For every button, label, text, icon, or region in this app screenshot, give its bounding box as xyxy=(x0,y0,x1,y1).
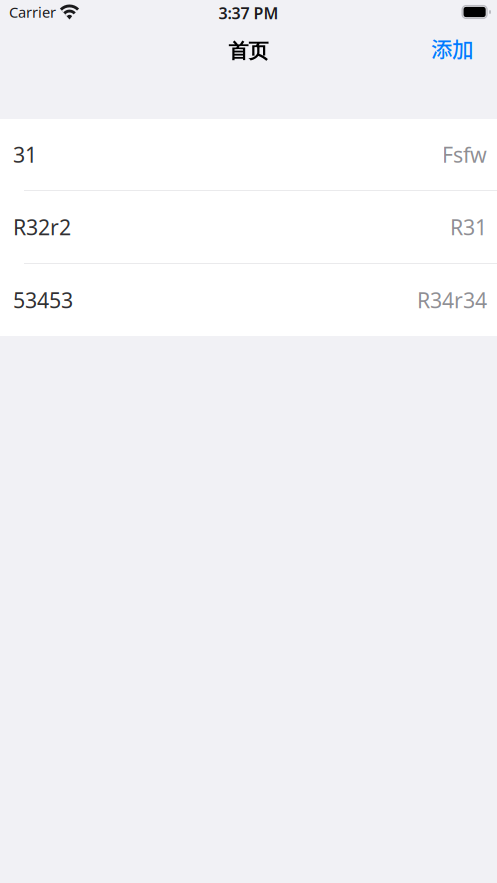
button[interactable]: 添加 xyxy=(425,29,479,71)
staticText: 3:37 PM xyxy=(218,2,278,24)
staticText: R32r2 xyxy=(13,213,71,241)
staticText: 53453 xyxy=(13,286,73,314)
button[interactable]: 53453 xyxy=(0,264,497,336)
staticText: 添加 xyxy=(431,33,473,63)
staticText: 31 xyxy=(13,140,37,169)
button[interactable]: 31 xyxy=(0,119,497,191)
staticText: 首页 xyxy=(228,39,268,63)
button[interactable]: R32r2 xyxy=(0,191,497,264)
staticText: R31 xyxy=(450,213,487,241)
staticText: Fsfw xyxy=(442,140,487,169)
staticText: Carrier xyxy=(9,2,56,22)
staticText: R34r34 xyxy=(417,286,487,314)
